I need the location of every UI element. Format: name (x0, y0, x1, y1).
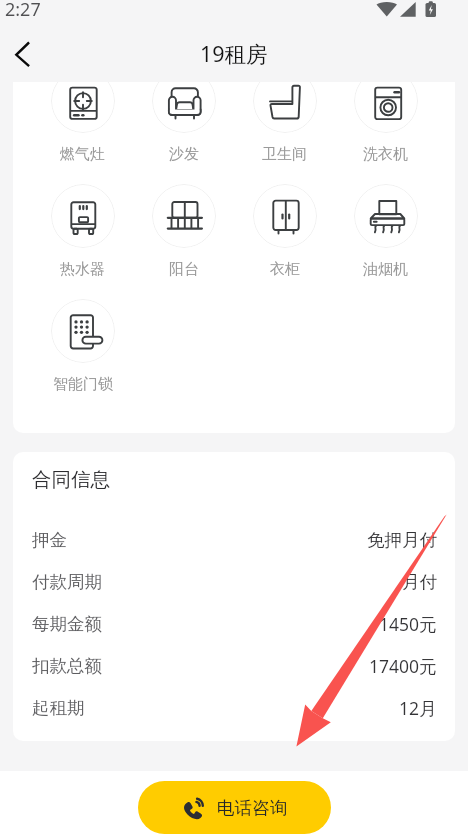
button[interactable]: 洗衣机 (335, 82, 436, 184)
staticText: 阳台 (169, 260, 199, 279)
staticText: 押金 (32, 529, 67, 551)
button[interactable]: 油烟机 (335, 184, 436, 299)
staticText: 沙发 (169, 145, 199, 164)
staticText: 付款周期 (32, 571, 102, 593)
button[interactable]: 智能门锁 (32, 299, 133, 414)
button[interactable]: 衣柜 (234, 184, 335, 299)
staticText: 17400元 (369, 654, 437, 678)
staticText: 12月 (399, 696, 437, 720)
staticText: 免押月付 (367, 529, 437, 551)
staticText: 起租期 (32, 697, 85, 719)
button[interactable]: Back (0, 26, 45, 72)
staticText: 衣柜 (270, 260, 300, 279)
staticText: 19租房 (200, 39, 268, 68)
staticText: 热水器 (60, 260, 105, 279)
staticText: 每期金额 (32, 613, 102, 635)
staticText: 月付 (402, 571, 437, 593)
staticText: 2:27 (5, 0, 41, 22)
button[interactable]: 热水器 (32, 184, 133, 299)
button[interactable]: 阳台 (133, 184, 234, 299)
staticText: 洗衣机 (363, 145, 408, 164)
staticText: 1450元 (379, 612, 437, 636)
button[interactable]: 沙发 (133, 82, 234, 184)
button[interactable]: 燃气灶 (32, 82, 133, 184)
staticText: 扣款总额 (32, 655, 102, 677)
button[interactable]: 卫生间 (234, 82, 335, 184)
button[interactable]: 电话咨询 (138, 781, 331, 834)
staticText: 卫生间 (262, 145, 307, 164)
staticText: 智能门锁 (53, 375, 113, 394)
staticText: 合同信息 (32, 467, 110, 492)
staticText: 电话咨询 (217, 797, 288, 819)
staticText: 燃气灶 (60, 145, 105, 164)
staticText: 油烟机 (363, 260, 408, 279)
